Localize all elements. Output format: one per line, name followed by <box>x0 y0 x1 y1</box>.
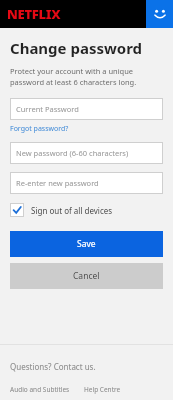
button[interactable]: Cancel <box>10 263 163 289</box>
button[interactable]: Sign out of all devices <box>10 203 163 217</box>
button[interactable]: New password (6-60 characters) <box>10 142 163 164</box>
staticText: New password (6-60 characters) <box>16 148 129 158</box>
staticText: Change password <box>10 38 143 58</box>
staticText: Cancel <box>73 270 100 282</box>
button[interactable]: Forgot password? <box>10 124 69 134</box>
button[interactable]: Help Centre <box>84 385 121 394</box>
staticText: Sign out of all devices <box>31 205 113 216</box>
button[interactable]: Current Password <box>10 98 163 120</box>
staticText: Re-enter new password <box>16 178 99 188</box>
button[interactable]: Help chat <box>146 0 173 28</box>
button[interactable]: Questions? Contact us. <box>10 361 96 372</box>
button[interactable]: Save <box>10 231 163 257</box>
staticText: Save <box>77 238 96 250</box>
staticText: Current Password <box>16 104 79 114</box>
staticText: Protect your account with a unique passw… <box>10 66 137 87</box>
button[interactable]: Audio and Subtitles <box>10 385 70 394</box>
button[interactable]: NETFLIX <box>7 5 61 23</box>
button[interactable]: Re-enter new password <box>10 172 163 194</box>
